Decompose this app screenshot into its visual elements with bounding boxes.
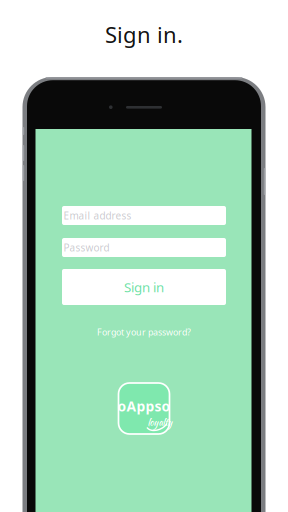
button[interactable]: Password — [62, 238, 226, 257]
staticText: oAppso — [117, 397, 170, 415]
staticText: Sign in — [124, 278, 164, 296]
staticText: Email address — [63, 209, 131, 222]
button[interactable]: Sign in — [62, 269, 226, 305]
staticText: Sign in. — [105, 19, 183, 49]
staticText: Password — [63, 241, 109, 254]
staticText: loyalty — [147, 416, 172, 429]
button[interactable]: Email address — [62, 206, 226, 225]
button[interactable]: Forgot your password? — [62, 325, 226, 339]
staticText: Forgot your password? — [97, 326, 191, 338]
